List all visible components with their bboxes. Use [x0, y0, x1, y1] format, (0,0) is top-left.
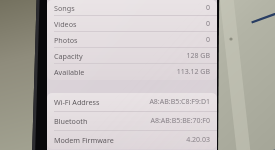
button[interactable]: Capacity	[47, 48, 217, 64]
button[interactable]: Bluetooth	[47, 112, 217, 131]
staticText: A8:AB:B5:BE:70:F0	[92, 116, 210, 126]
staticText: 0	[82, 35, 210, 45]
staticText: Songs	[54, 3, 75, 13]
button[interactable]: Wi-Fi Address	[47, 93, 217, 112]
staticText: A8:AB:B5:C8:F9:D1	[104, 97, 210, 107]
staticText: 0	[79, 3, 210, 13]
staticText: Capacity	[54, 51, 83, 61]
staticText: 4.20.03	[118, 135, 210, 145]
staticText: 113.12 GB	[89, 67, 210, 77]
staticText: Bluetooth	[54, 116, 88, 126]
staticText: Wi-Fi Address	[54, 97, 100, 107]
button[interactable]: Photos	[47, 32, 217, 48]
staticText: Photos	[54, 35, 78, 45]
button[interactable]: Videos	[47, 16, 217, 32]
button[interactable]: Available	[47, 64, 217, 80]
staticText: Videos	[54, 19, 77, 29]
button[interactable]: Songs	[47, 0, 217, 16]
staticText: 128 GB	[87, 51, 210, 61]
staticText: Modem Firmware	[54, 135, 114, 145]
staticText: 0	[81, 19, 210, 29]
button[interactable]: Modem Firmware	[47, 131, 217, 149]
staticText: Available	[54, 67, 85, 77]
